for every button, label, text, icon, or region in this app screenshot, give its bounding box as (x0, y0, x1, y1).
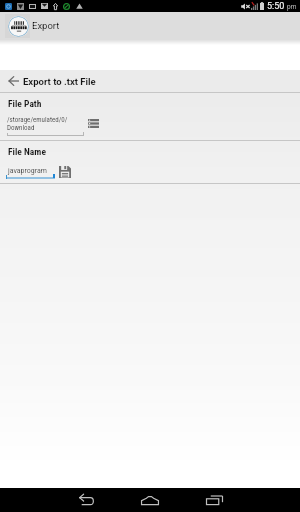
staticText: 5:50 (267, 1, 285, 12)
button[interactable]: Browse folders (88, 119, 99, 128)
button[interactable]: Recent apps (196, 488, 232, 512)
staticText: pm (287, 3, 297, 11)
staticText: Export (32, 20, 60, 31)
staticText: javaprogram (8, 167, 47, 175)
button[interactable]: Home (132, 488, 168, 512)
staticText: File Path (8, 98, 42, 109)
other: Back (8, 76, 19, 86)
button[interactable]: Back (68, 488, 104, 512)
staticText: Export to .txt File (23, 76, 96, 87)
button[interactable]: Open app (8, 16, 29, 37)
button[interactable]: Back (0, 70, 300, 92)
staticText: /storage/emulated/0/ Download (7, 116, 68, 132)
button[interactable]: Save file (59, 166, 71, 178)
staticText: File Name (8, 146, 46, 157)
